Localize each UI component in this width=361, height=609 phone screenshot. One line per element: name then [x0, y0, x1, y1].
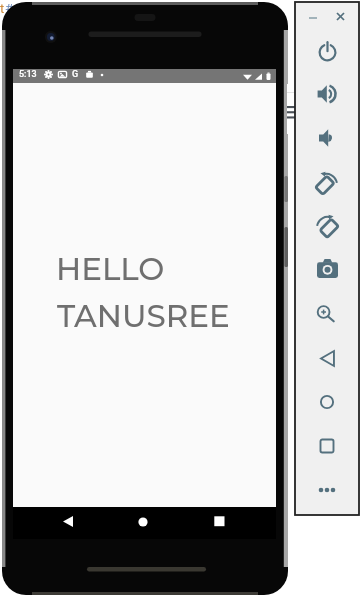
button[interactable]: Back [54, 508, 81, 535]
button[interactable]: Rotate left [308, 163, 346, 201]
button[interactable]: Minimize [304, 9, 322, 27]
staticText: TANUSREE [57, 297, 230, 335]
button[interactable]: Zoom in [308, 295, 346, 333]
button[interactable]: Home [308, 383, 346, 421]
button[interactable]: Overview [308, 427, 346, 465]
staticText: # [5, 1, 14, 16]
button[interactable]: Close [331, 7, 349, 25]
button[interactable]: Volume up [308, 75, 346, 113]
button[interactable]: More [308, 471, 346, 509]
staticText: t [0, 1, 5, 16]
button[interactable]: Rotate right [308, 206, 346, 244]
button[interactable]: Take screenshot [308, 249, 346, 287]
staticText: 5:13 [19, 69, 37, 80]
button[interactable]: Recent apps [206, 508, 233, 535]
button[interactable]: Home [129, 508, 156, 535]
staticText: HELLO [56, 250, 165, 288]
staticText: G [72, 69, 79, 80]
button[interactable]: Back [308, 339, 346, 377]
button[interactable]: Power [308, 32, 346, 70]
button[interactable]: Volume down [308, 119, 346, 157]
